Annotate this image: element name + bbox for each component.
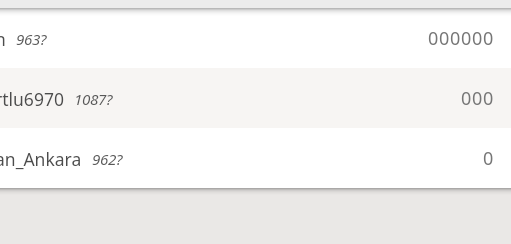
staticText: 0 bbox=[483, 146, 494, 171]
staticText: n bbox=[0, 27, 6, 51]
button[interactable]: n bbox=[0, 8, 511, 68]
staticText: 962? bbox=[92, 149, 123, 170]
button[interactable]: Bottom navigation bar bbox=[0, 188, 511, 244]
button[interactable]: rtlu6970 bbox=[0, 68, 511, 128]
staticText: 000 bbox=[461, 86, 494, 111]
staticText: 1087? bbox=[74, 89, 113, 110]
staticText: 000000 bbox=[428, 26, 494, 51]
staticText: rtlu6970 bbox=[0, 87, 64, 111]
staticText: 963? bbox=[16, 29, 47, 50]
staticText: an_Ankara bbox=[0, 147, 82, 171]
button[interactable]: an_Ankara bbox=[0, 128, 511, 188]
